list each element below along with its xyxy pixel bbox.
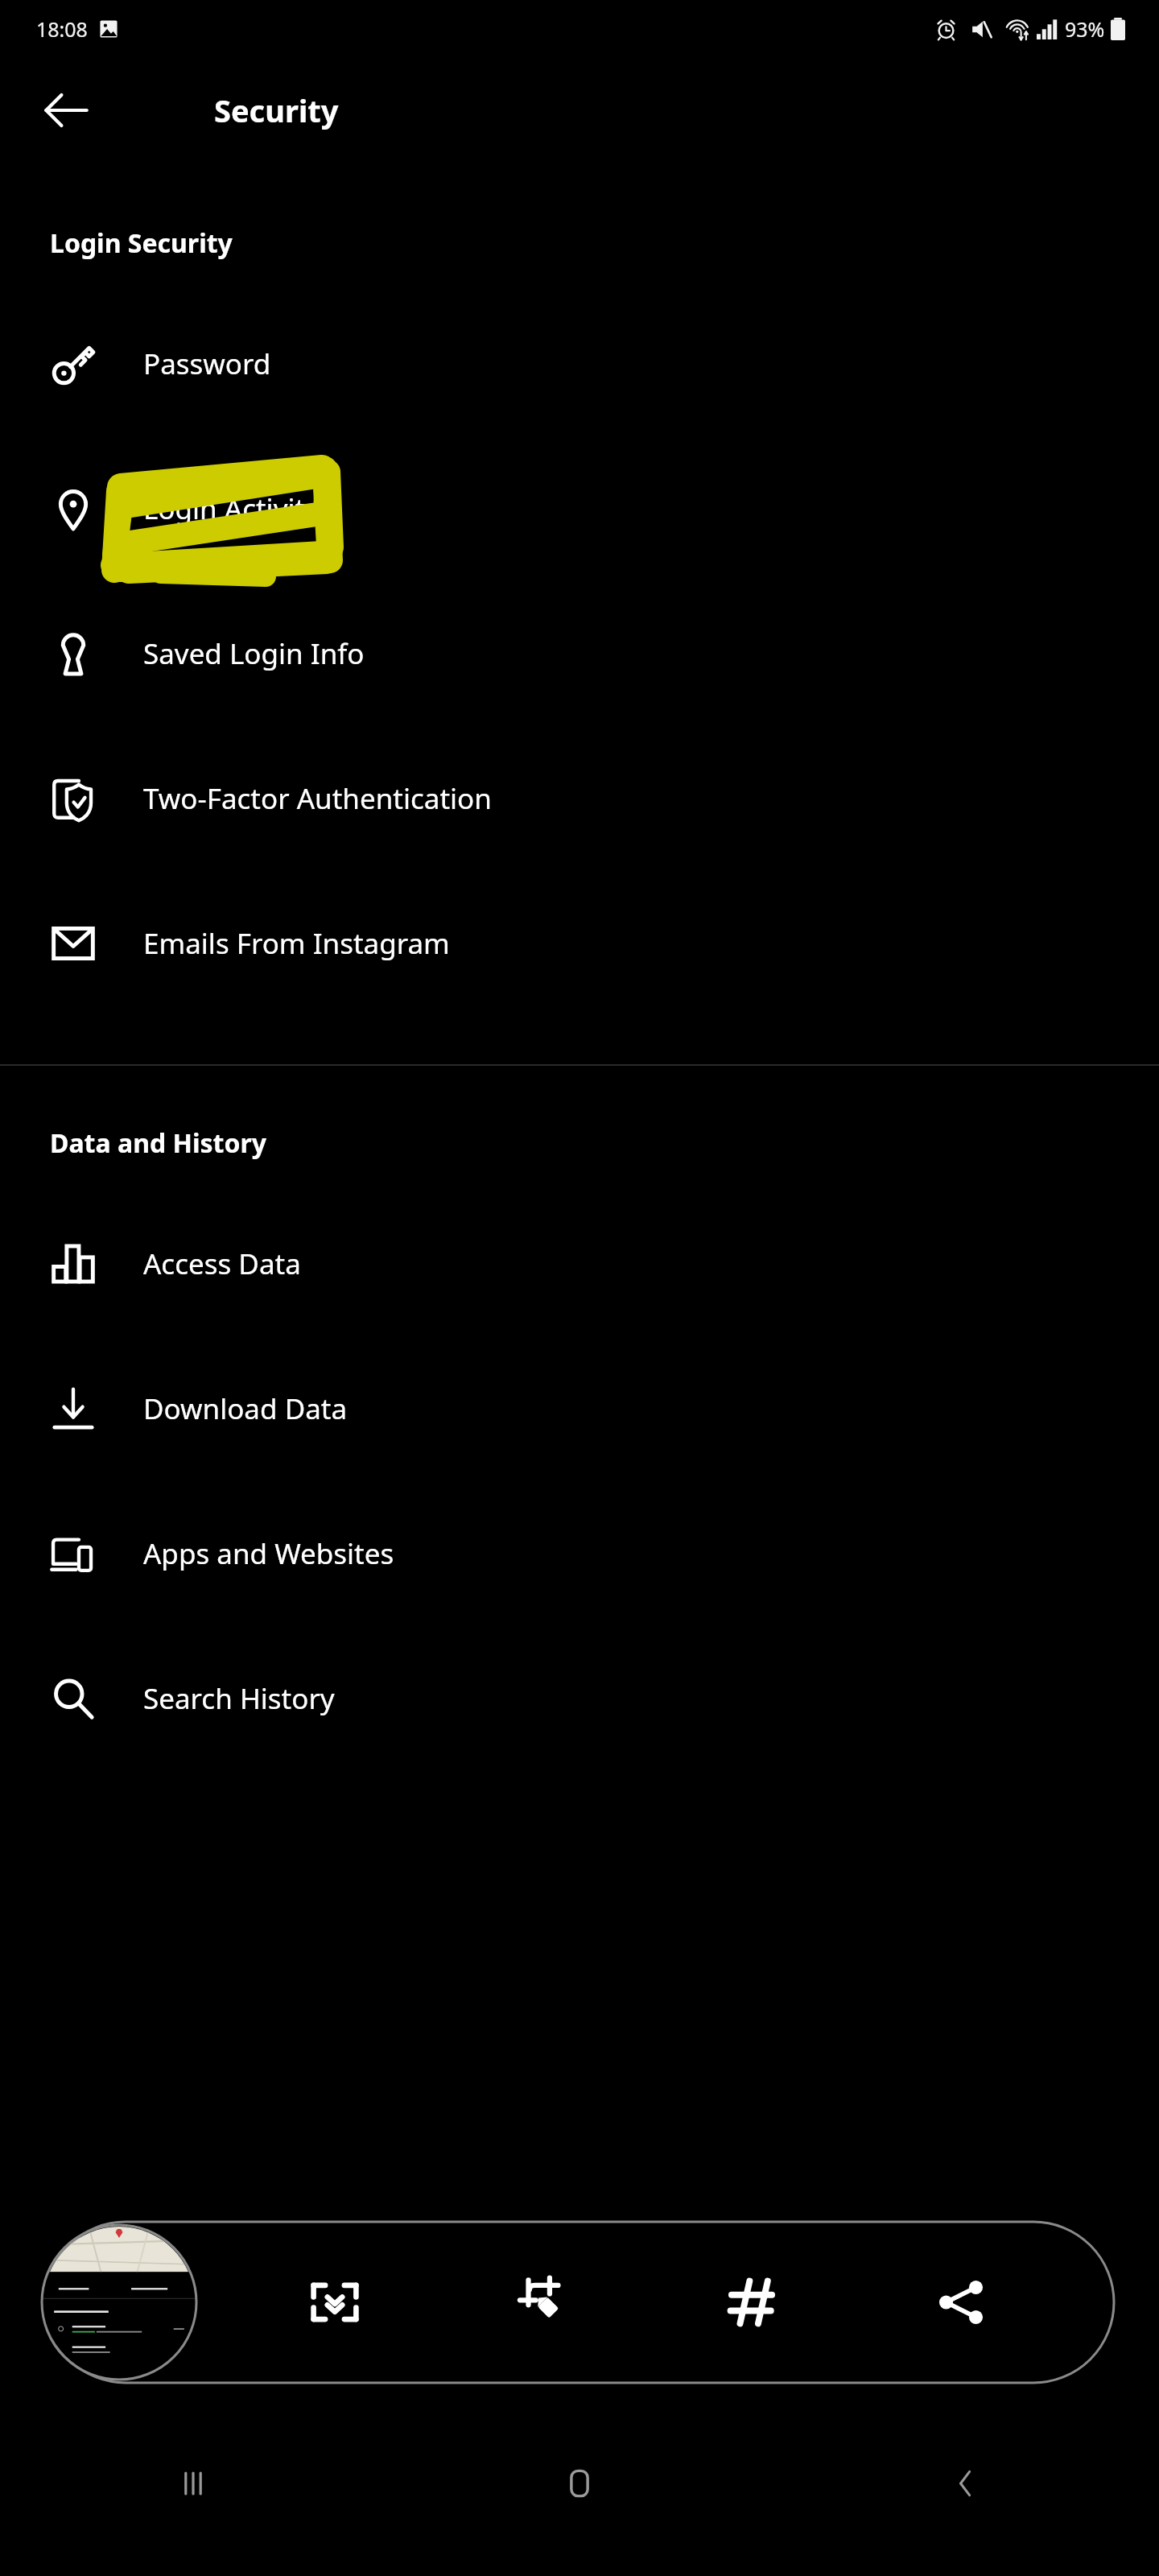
button[interactable]: Two-Factor Authentication — [0, 726, 1159, 871]
button[interactable]: Saved Login Info — [0, 581, 1159, 726]
button[interactable]: Scroll capture — [230, 2222, 439, 2383]
staticText: Access Data — [143, 1245, 301, 1283]
button[interactable]: Apps and Websites — [0, 1481, 1159, 1626]
button[interactable]: Download Data — [0, 1336, 1159, 1481]
button[interactable]: Screenshot preview — [40, 2223, 198, 2381]
button[interactable]: Crop and edit — [439, 2222, 647, 2383]
button[interactable]: Home — [386, 2423, 773, 2544]
staticText: 93% — [1065, 15, 1105, 43]
staticText: Two-Factor Authentication — [143, 779, 492, 818]
staticText: Login Security — [50, 225, 233, 261]
staticText: Search History — [143, 1679, 335, 1718]
staticText: Apps and Websites — [143, 1534, 394, 1573]
button[interactable]: Back — [773, 2423, 1159, 2544]
button[interactable]: Search History — [0, 1626, 1159, 1771]
staticText: Data and History — [50, 1125, 267, 1161]
staticText: Password — [143, 345, 271, 383]
staticText: Login Activity — [143, 489, 320, 528]
staticText: Download Data — [143, 1389, 348, 1428]
staticText: Security — [214, 89, 339, 131]
button[interactable]: Login Activity — [0, 436, 1159, 581]
staticText: 18:08 — [36, 15, 88, 43]
button[interactable]: Access Data — [0, 1191, 1159, 1336]
button[interactable]: Tags — [647, 2222, 856, 2383]
button[interactable]: Recent apps — [0, 2423, 386, 2544]
button[interactable]: Back — [32, 76, 100, 144]
button[interactable]: Share — [856, 2222, 1066, 2383]
button[interactable]: Password — [0, 291, 1159, 436]
button[interactable]: Emails From Instagram — [0, 871, 1159, 1016]
staticText: Emails From Instagram — [143, 924, 450, 963]
staticText: Saved Login Info — [143, 634, 365, 673]
